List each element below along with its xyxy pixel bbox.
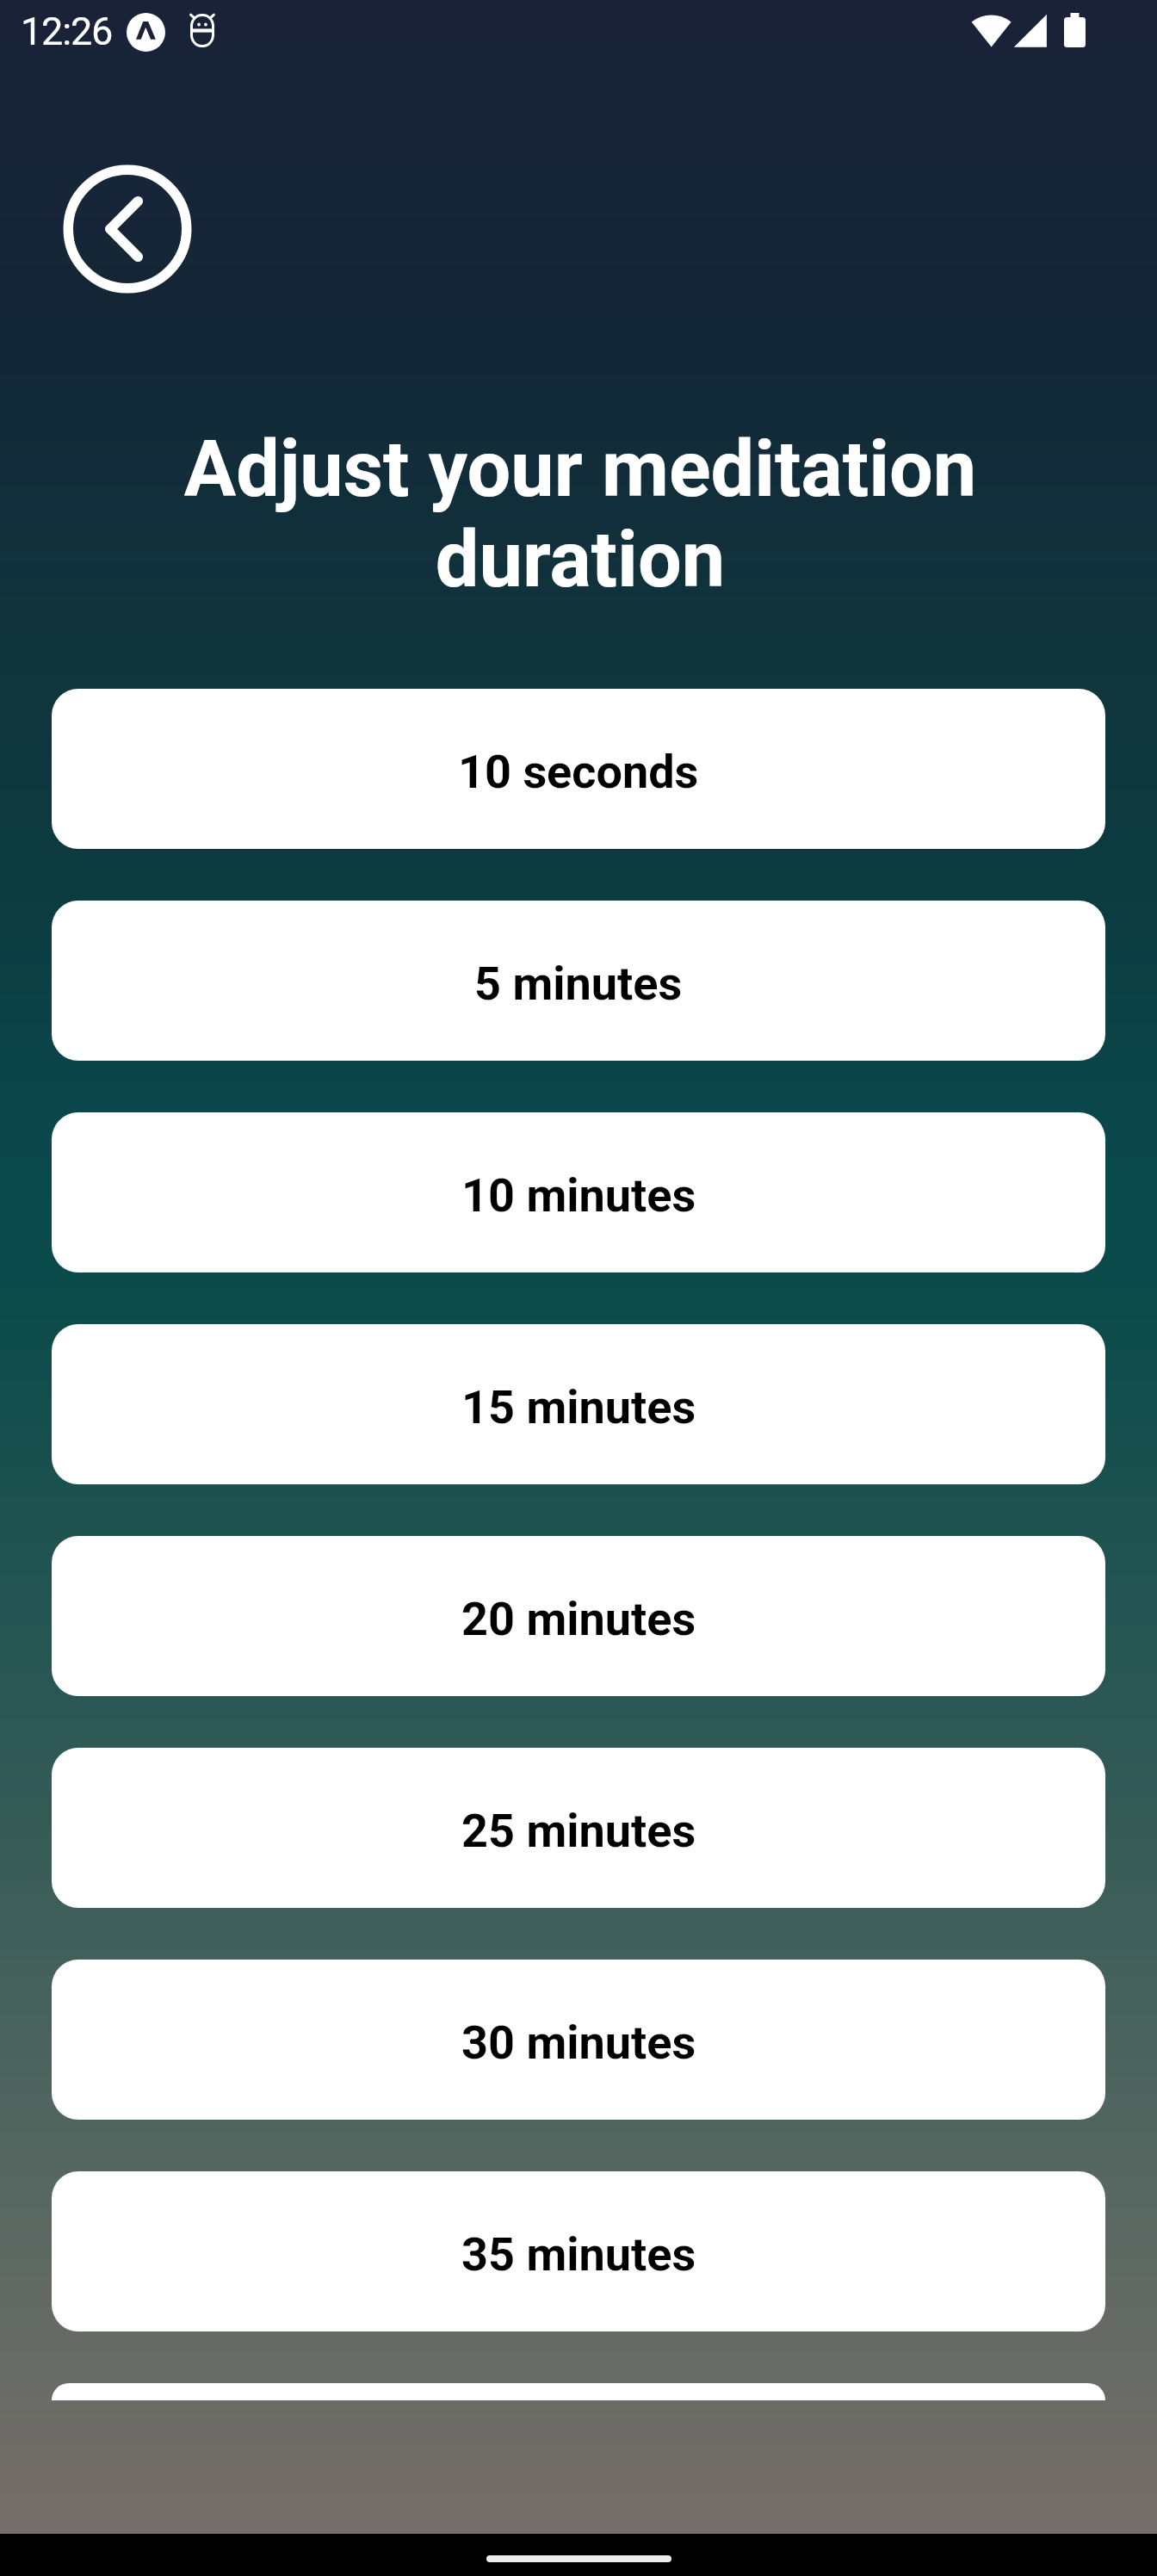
- button[interactable]: Back: [54, 156, 201, 302]
- button[interactable]: 30 minutes: [52, 1960, 1105, 2120]
- button[interactable]: 20 minutes: [52, 1536, 1105, 1696]
- staticText: 15 minutes: [461, 1380, 696, 1434]
- staticText: 25 minutes: [461, 1804, 696, 1858]
- staticText: 5 minutes: [474, 957, 683, 1011]
- staticText: 10 minutes: [461, 1168, 696, 1223]
- staticText: 30 minutes: [461, 2016, 696, 2070]
- staticText: Adjust your meditation duration: [139, 424, 1021, 605]
- staticText: 35 minutes: [461, 2227, 696, 2282]
- button[interactable]: 25 minutes: [52, 1748, 1105, 1908]
- button[interactable]: 5 minutes: [52, 901, 1105, 1061]
- staticText: 20 minutes: [461, 1592, 696, 1646]
- button[interactable]: 35 minutes: [52, 2171, 1105, 2331]
- button[interactable]: 15 minutes: [52, 1324, 1105, 1484]
- button[interactable]: 10 minutes: [52, 1112, 1105, 1273]
- button[interactable]: [52, 2383, 1105, 2400]
- staticText: 12:26: [21, 9, 113, 54]
- button[interactable]: 10 seconds: [52, 689, 1105, 849]
- staticText: 10 seconds: [458, 745, 699, 799]
